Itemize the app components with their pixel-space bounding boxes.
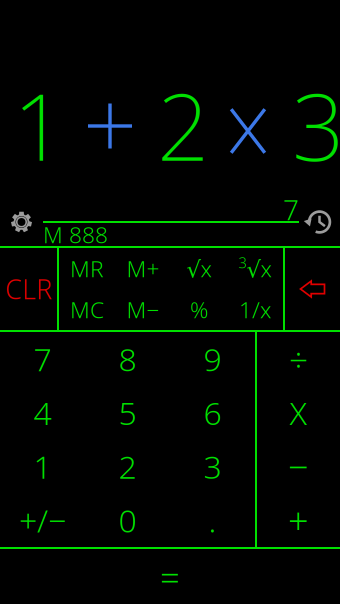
- button[interactable]: −: [257, 439, 340, 493]
- staticText: 7: [283, 191, 299, 228]
- button[interactable]: +: [257, 493, 340, 547]
- button[interactable]: MR: [59, 248, 115, 289]
- staticText: =: [160, 554, 180, 600]
- button[interactable]: .: [170, 493, 255, 547]
- staticText: +/−: [19, 499, 66, 541]
- button[interactable]: M+: [115, 248, 171, 289]
- staticText: 3: [292, 64, 340, 186]
- staticText: 5: [118, 391, 136, 434]
- button[interactable]: 9: [170, 332, 255, 386]
- staticText: %: [190, 294, 208, 324]
- button[interactable]: =: [0, 549, 340, 604]
- button[interactable]: 4: [0, 386, 85, 440]
- button[interactable]: CLR: [0, 248, 57, 330]
- button[interactable]: 6: [170, 386, 255, 440]
- staticText: .: [208, 499, 216, 541]
- button[interactable]: 8: [85, 332, 170, 386]
- staticText: MR: [70, 253, 104, 283]
- button[interactable]: 0: [85, 493, 170, 547]
- staticText: M+: [126, 253, 159, 283]
- button[interactable]: 2: [85, 439, 170, 493]
- button[interactable]: 1/x: [227, 289, 283, 330]
- staticText: 3: [238, 253, 246, 272]
- button[interactable]: History: [299, 198, 340, 246]
- staticText: 4: [33, 391, 51, 434]
- staticText: 2: [118, 445, 136, 488]
- staticText: 1/x: [239, 294, 271, 324]
- button[interactable]: 3: [170, 439, 255, 493]
- staticText: −: [288, 442, 309, 490]
- staticText: 9: [203, 338, 221, 380]
- button[interactable]: Backspace: [285, 248, 340, 330]
- staticText: 7: [33, 338, 51, 380]
- staticText: M−: [126, 294, 159, 324]
- button[interactable]: MC: [59, 289, 115, 330]
- button[interactable]: 1: [0, 439, 85, 493]
- button[interactable]: X: [257, 386, 340, 440]
- button[interactable]: ÷: [257, 332, 340, 386]
- button[interactable]: 7: [0, 332, 85, 386]
- staticText: X: [289, 391, 307, 434]
- staticText: 2: [157, 64, 209, 186]
- button[interactable]: 3: [227, 248, 283, 289]
- staticText: 0: [118, 499, 136, 541]
- staticText: 1: [13, 64, 65, 186]
- button[interactable]: √x: [171, 248, 227, 289]
- staticText: +: [288, 496, 309, 544]
- staticText: √x: [186, 253, 211, 283]
- staticText: 1: [33, 445, 51, 488]
- button[interactable]: %: [171, 289, 227, 330]
- button[interactable]: +/−: [0, 493, 85, 547]
- staticText: √x: [246, 253, 271, 283]
- button[interactable]: 5: [85, 386, 170, 440]
- staticText: MC: [70, 294, 104, 324]
- staticText: M 888: [43, 219, 108, 249]
- button[interactable]: Settings: [0, 198, 43, 246]
- staticText: CLR: [5, 271, 52, 307]
- button[interactable]: M−: [115, 289, 171, 330]
- staticText: 6: [203, 391, 221, 434]
- staticText: 8: [118, 338, 136, 380]
- staticText: 3: [203, 445, 221, 488]
- staticText: ÷: [289, 337, 308, 381]
